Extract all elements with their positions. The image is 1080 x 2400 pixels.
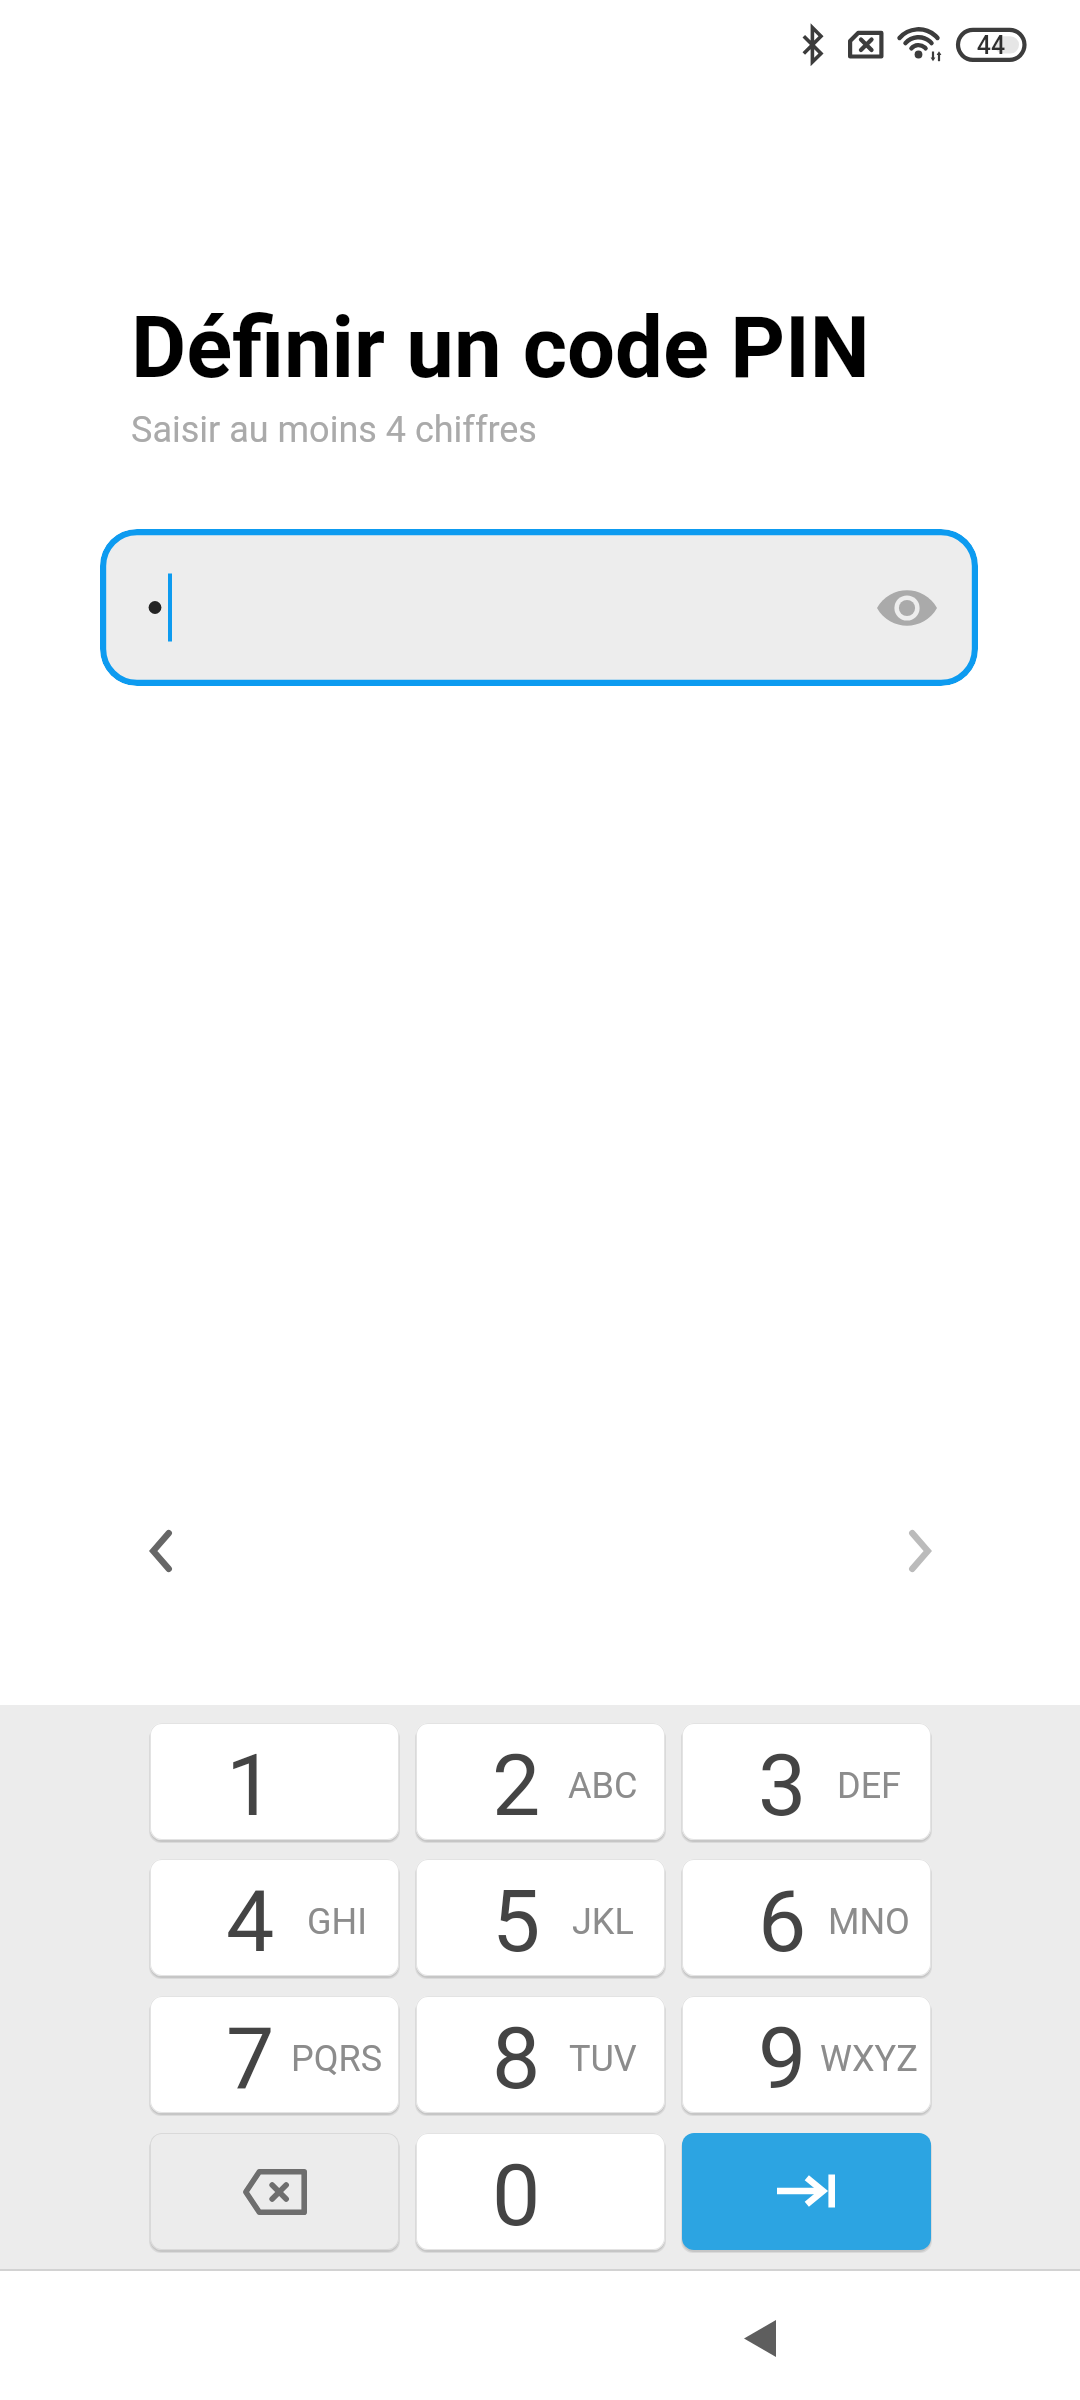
button[interactable]: Précédent: [115, 1505, 207, 1597]
button[interactable]: Valider: [682, 2133, 931, 2250]
button[interactable]: 3: [682, 1723, 931, 1840]
button[interactable]: 9: [682, 1996, 931, 2113]
button[interactable]: 6: [682, 1859, 931, 1976]
staticText: 7: [226, 2008, 275, 2109]
button[interactable]: 7: [150, 1996, 399, 2113]
staticText: ABC: [568, 1765, 638, 1807]
staticText: 4: [226, 1871, 275, 1972]
staticText: 1: [226, 1735, 275, 1836]
button[interactable]: 2: [416, 1723, 665, 1840]
button[interactable]: Suivant: [874, 1505, 966, 1597]
staticText: DEF: [837, 1765, 901, 1807]
staticText: PQRS: [291, 2038, 383, 2080]
staticText: 5: [492, 1871, 541, 1972]
button[interactable]: Retour: [700, 2278, 820, 2398]
staticText: WXYZ: [820, 2038, 918, 2080]
staticText: 9: [758, 2008, 807, 2109]
button[interactable]: Afficher le code PIN: [862, 563, 952, 653]
button[interactable]: 4: [150, 1859, 399, 1976]
staticText: 2: [492, 1735, 541, 1836]
button[interactable]: 5: [416, 1859, 665, 1976]
staticText: 44: [961, 31, 1021, 60]
staticText: 6: [758, 1871, 807, 1972]
staticText: JKL: [572, 1901, 634, 1943]
button[interactable]: Afficher le code PIN: [100, 529, 978, 686]
staticText: 3: [758, 1735, 807, 1836]
staticText: Définir un code PIN: [131, 298, 870, 398]
staticText: MNO: [828, 1901, 910, 1943]
staticText: 0: [492, 2145, 541, 2246]
button[interactable]: 1: [150, 1723, 399, 1840]
staticText: GHI: [307, 1901, 367, 1943]
button[interactable]: Supprimer: [150, 2133, 399, 2250]
button[interactable]: 8: [416, 1996, 665, 2113]
button[interactable]: 0: [416, 2133, 665, 2250]
staticText: TUV: [569, 2038, 637, 2080]
staticText: 8: [492, 2008, 541, 2109]
staticText: Saisir au moins 4 chiffres: [131, 409, 537, 451]
